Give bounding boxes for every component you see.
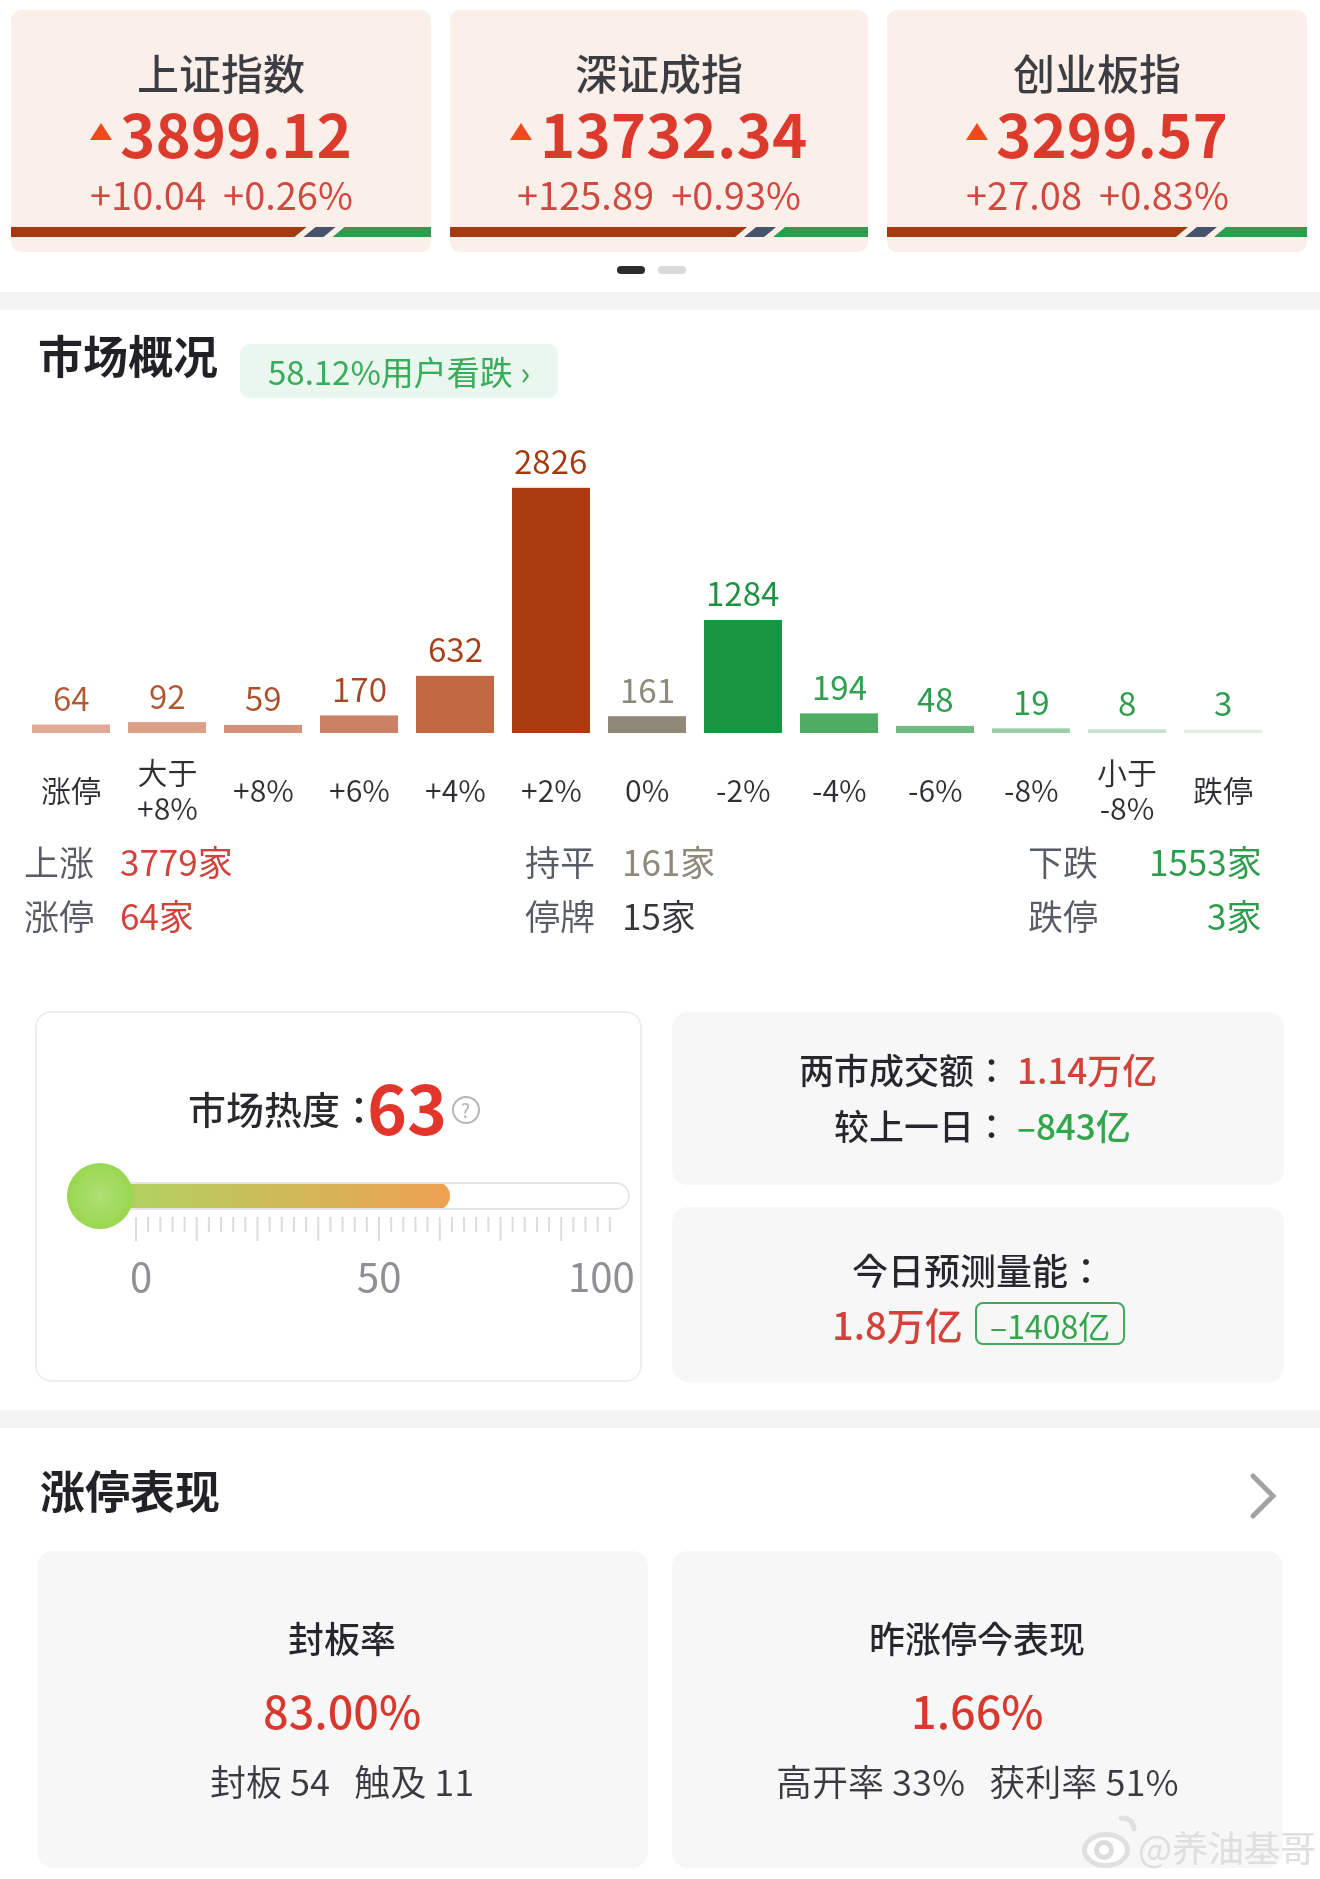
staticText: +125.89 +0.93% [517, 166, 802, 221]
staticText: +27.08 +0.83% [966, 166, 1229, 221]
staticText: 1553家 [1149, 835, 1262, 886]
staticText: 15家 [622, 889, 696, 940]
staticText: 较上一日： [834, 1099, 1010, 1150]
button[interactable]: 涨停表现 [0, 1448, 1320, 1532]
staticText: 上涨 [24, 835, 95, 886]
staticText: 下跌 [1028, 835, 1099, 886]
staticText: 0% [625, 767, 670, 810]
staticText: 封板 54 触及 11 [210, 1754, 475, 1806]
staticText: 2826 [514, 436, 588, 484]
staticText: +8% [233, 767, 294, 810]
staticText: 涨停 [41, 767, 101, 810]
staticText: 涨停表现 [40, 1457, 221, 1522]
staticText: 1284 [706, 568, 780, 616]
staticText: –843亿 [1017, 1099, 1131, 1150]
button[interactable] [37, 1551, 648, 1868]
button[interactable]: 上证指数 [11, 10, 431, 252]
staticText: 上证指数 [137, 41, 306, 102]
staticText: 封板率 [288, 1611, 397, 1663]
staticText: 1.8万亿 [832, 1296, 963, 1351]
staticText: 58.12%用户看跌 › [268, 347, 531, 395]
staticText: 昨涨停今表现 [869, 1611, 1086, 1663]
staticText: 小于 -8% [1097, 749, 1157, 828]
button[interactable] [35, 1011, 642, 1382]
button[interactable]: 创业板指 [887, 10, 1307, 252]
staticText: 92 [149, 671, 186, 719]
staticText: 59 [245, 673, 282, 721]
staticText: 高开率 33% 获利率 51% [776, 1754, 1179, 1806]
staticText: @养油基哥 [1138, 1820, 1317, 1872]
staticText: -2% [716, 767, 771, 810]
staticText: 83.00% [263, 1677, 422, 1742]
staticText: 跌停 [1028, 889, 1099, 940]
button[interactable] [672, 1551, 1283, 1868]
staticText: 市场热度： [188, 1080, 379, 1135]
staticText: 3 [1214, 678, 1233, 726]
staticText: 48 [917, 674, 954, 722]
staticText: +6% [329, 767, 390, 810]
staticText: 跌停 [1193, 767, 1253, 810]
staticText: 涨停 [24, 889, 95, 940]
staticText: 161 [620, 665, 675, 713]
staticText: 3家 [1207, 889, 1262, 940]
staticText: 100 [568, 1246, 635, 1304]
staticText: 0 [130, 1246, 153, 1304]
staticText: 大于 +8% [137, 749, 198, 828]
staticText: 1.66% [911, 1677, 1044, 1742]
staticText: +4% [425, 767, 486, 810]
staticText: 停牌 [525, 889, 596, 940]
staticText: 今日预测量能： [852, 1243, 1105, 1295]
staticText: ? [461, 1096, 471, 1124]
staticText: 13732.34 [540, 88, 808, 175]
staticText: –1408亿 [990, 1302, 1111, 1345]
button[interactable] [672, 1012, 1284, 1185]
staticText: 64家 [120, 889, 194, 940]
staticText: 创业板指 [1013, 41, 1182, 102]
staticText: 两市成交额： [799, 1043, 1010, 1094]
staticText: 19 [1013, 677, 1050, 725]
staticText: 1.14万亿 [1017, 1043, 1158, 1094]
staticText: 170 [332, 664, 387, 712]
staticText: 63 [367, 1056, 448, 1154]
staticText: +10.04 +0.26% [90, 166, 353, 221]
button[interactable] [672, 1207, 1284, 1382]
staticText: 161家 [622, 835, 716, 886]
button[interactable]: 58.12%用户看跌 › [240, 344, 558, 398]
staticText: 194 [812, 662, 867, 710]
button[interactable]: 深证成指 [450, 10, 868, 252]
staticText: -6% [908, 767, 963, 810]
staticText: 50 [357, 1246, 402, 1304]
staticText: 3299.57 [996, 88, 1228, 175]
staticText: 深证成指 [575, 41, 744, 102]
staticText: 持平 [525, 835, 596, 886]
staticText: 632 [428, 624, 483, 672]
staticText: 3779家 [120, 835, 233, 886]
staticText: +2% [521, 767, 582, 810]
staticText: 8 [1118, 678, 1137, 726]
staticText: 64 [53, 673, 90, 721]
staticText: -8% [1004, 767, 1059, 810]
staticText: 3899.12 [120, 88, 352, 175]
staticText: 市场概况 [38, 322, 219, 387]
staticText: -4% [812, 767, 867, 810]
